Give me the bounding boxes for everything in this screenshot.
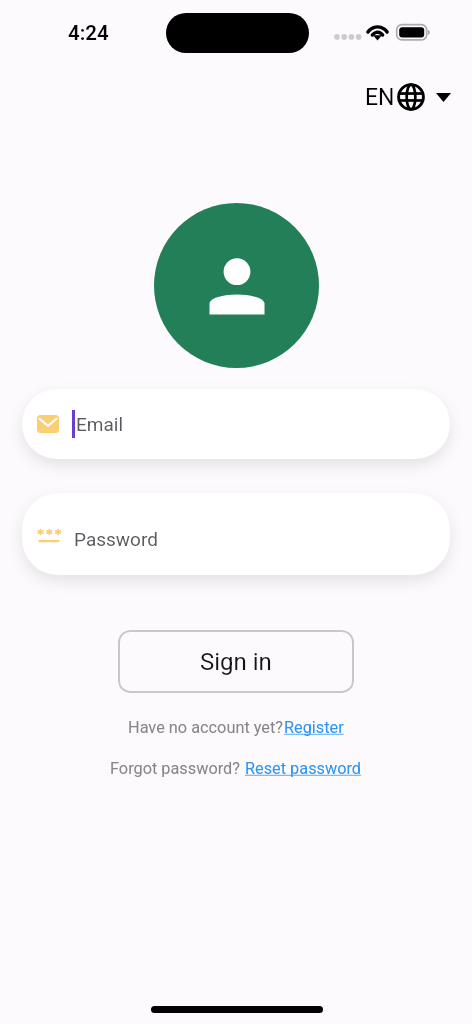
- staticText: Forgot password?: [110, 759, 245, 778]
- staticText: 4:24: [68, 21, 109, 45]
- button[interactable]: Change language: [361, 78, 455, 116]
- button[interactable]: Password: [22, 493, 450, 575]
- staticText: Have no account yet?: [128, 718, 284, 737]
- staticText: Sign in: [200, 648, 272, 676]
- staticText: Email: [76, 413, 124, 435]
- button[interactable]: Sign in: [118, 630, 354, 693]
- button[interactable]: Email: [22, 389, 450, 459]
- staticText: EN: [365, 84, 395, 111]
- button[interactable]: Reset password: [245, 759, 362, 778]
- button[interactable]: Register: [284, 718, 344, 737]
- staticText: Password: [74, 528, 158, 550]
- button[interactable]: Profile avatar: [154, 203, 319, 368]
